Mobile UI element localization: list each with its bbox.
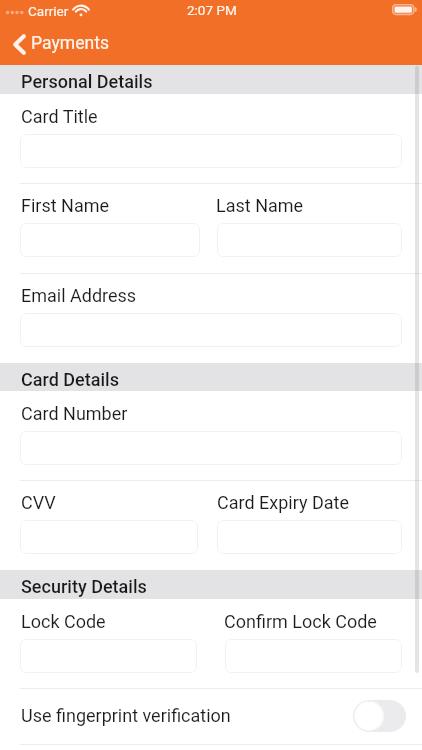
staticText: Card Expiry Date <box>217 492 349 513</box>
staticText: Security Details <box>21 576 147 597</box>
button[interactable] <box>20 223 200 257</box>
button[interactable] <box>20 313 402 347</box>
staticText: Card Details <box>21 369 119 390</box>
staticText: Use fingerprint verification <box>21 705 231 726</box>
button[interactable]: Use fingerprint verification toggle, off <box>353 700 406 732</box>
button[interactable]: Use fingerprint verification <box>0 688 422 743</box>
staticText: First Name <box>21 195 110 216</box>
button[interactable] <box>225 639 402 673</box>
staticText: Carrier <box>28 3 69 19</box>
button[interactable] <box>20 134 402 168</box>
staticText: Personal Details <box>21 71 153 92</box>
staticText: Payments <box>31 33 110 54</box>
staticText: Last Name <box>216 195 304 216</box>
button[interactable] <box>20 639 197 673</box>
staticText: CVV <box>21 492 56 513</box>
staticText: 2:07 PM <box>187 2 237 18</box>
staticText: Card Title <box>21 106 98 127</box>
staticText: Confirm Lock Code <box>224 611 377 632</box>
button[interactable] <box>20 431 402 465</box>
button[interactable] <box>217 520 402 554</box>
button[interactable]: Back to Payments <box>0 24 422 65</box>
staticText: Email Address <box>21 285 137 306</box>
button[interactable] <box>20 520 198 554</box>
button[interactable] <box>217 223 402 257</box>
staticText: Lock Code <box>21 611 106 632</box>
staticText: Card Number <box>21 403 128 424</box>
